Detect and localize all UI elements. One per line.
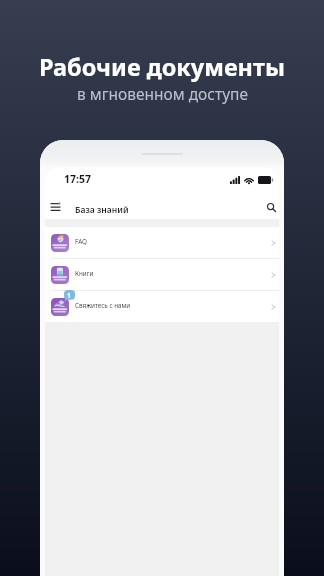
button[interactable]: Книги (45, 259, 279, 290)
button[interactable]: Menu (45, 197, 65, 217)
staticText: База знаний (75, 204, 129, 216)
staticText: 17:57 (64, 172, 91, 186)
staticText: 1 (67, 291, 72, 301)
button[interactable]: Search (261, 197, 279, 217)
staticText: в мгновенном доступе (77, 83, 248, 104)
staticText: Рабочие документы (39, 51, 285, 83)
button[interactable]: FAQ (45, 227, 279, 258)
staticText: Свяжитесь с нами (75, 301, 131, 310)
staticText: FAQ (75, 237, 87, 246)
staticText: Книги (75, 269, 94, 278)
button[interactable]: 1 (45, 291, 279, 322)
